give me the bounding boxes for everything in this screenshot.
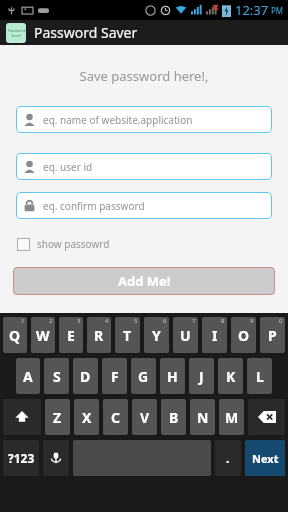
staticText: R — [94, 326, 104, 345]
staticText: 0 — [279, 317, 283, 325]
staticText: A — [23, 367, 33, 386]
button[interactable]: T — [115, 317, 140, 353]
button[interactable]: P — [260, 317, 285, 353]
staticText: Password Saver — [34, 23, 138, 42]
button[interactable]: G — [131, 358, 156, 394]
staticText: H — [167, 367, 178, 386]
button[interactable]: F — [102, 358, 127, 394]
button[interactable]: B — [161, 399, 186, 435]
button[interactable]: S — [44, 358, 69, 394]
button[interactable]: D — [73, 358, 98, 394]
button[interactable]: Q — [3, 317, 27, 353]
button[interactable]: J — [189, 358, 214, 394]
staticText: 4 — [105, 317, 109, 325]
button[interactable]: eq. confirm password — [16, 192, 272, 219]
button[interactable]: R — [87, 317, 111, 353]
staticText: 1 — [21, 317, 25, 325]
button[interactable]: show passowrd — [17, 237, 110, 251]
staticText: 7 — [192, 317, 196, 325]
staticText: Add Me! — [118, 272, 171, 290]
staticText: S — [53, 367, 61, 386]
staticText: Next — [252, 451, 279, 466]
staticText: G — [138, 367, 149, 386]
staticText: J — [199, 367, 204, 386]
button[interactable]: Voice input — [43, 440, 69, 476]
button[interactable]: V — [132, 399, 157, 435]
staticText: K — [226, 367, 236, 386]
button[interactable]: Y — [144, 317, 169, 353]
staticText: C — [111, 408, 120, 427]
staticText: D — [80, 367, 91, 386]
button[interactable]: L — [247, 358, 272, 394]
button[interactable]: eq. user id — [16, 153, 272, 180]
staticText: E — [67, 326, 75, 345]
staticText: 8 — [221, 317, 225, 325]
staticText: ?123 — [8, 450, 35, 466]
staticText: 5 — [134, 317, 138, 325]
staticText: T — [123, 326, 132, 345]
button[interactable]: I — [202, 317, 227, 353]
staticText: . — [226, 450, 230, 466]
button[interactable]: H — [160, 358, 185, 394]
button[interactable]: . — [215, 440, 241, 476]
button[interactable]: O — [231, 317, 256, 353]
staticText: Y — [152, 326, 161, 345]
staticText: O — [238, 326, 250, 345]
staticText: F — [111, 367, 119, 386]
staticText: I — [212, 326, 218, 345]
button[interactable]: eq. name of website,application — [16, 106, 272, 133]
staticText: 6 — [163, 317, 167, 325]
staticText: W — [36, 326, 50, 345]
staticText: L — [256, 367, 264, 386]
staticText: M — [225, 408, 239, 427]
staticText: eq. confirm password — [43, 199, 145, 213]
button[interactable]: A — [16, 358, 40, 394]
button[interactable]: Next — [245, 440, 285, 476]
staticText: P — [268, 326, 277, 345]
staticText: U — [180, 326, 191, 345]
button[interactable]: Backspace — [248, 399, 285, 435]
button[interactable]: X — [74, 399, 99, 435]
staticText: eq. user id — [43, 160, 93, 174]
staticText: 2 — [49, 317, 53, 325]
staticText: show passowrd — [37, 237, 110, 251]
button[interactable]: N — [190, 399, 215, 435]
button[interactable]: ?123 — [3, 440, 39, 476]
staticText: Q — [9, 326, 21, 345]
button[interactable]: E — [59, 317, 83, 353]
staticText: 12:37 — [235, 1, 269, 19]
staticText: eq. name of website,application — [43, 113, 193, 127]
staticText: Z — [53, 408, 62, 427]
staticText: Password — [7, 28, 26, 33]
staticText: N — [197, 408, 209, 427]
staticText: PM — [271, 5, 284, 16]
button[interactable]: Add Me! — [13, 267, 275, 295]
button[interactable]: W — [31, 317, 55, 353]
staticText: X — [82, 408, 92, 427]
button[interactable]: U — [173, 317, 198, 353]
staticText: B — [169, 408, 179, 427]
staticText: Save password here!, — [0, 67, 288, 85]
button[interactable]: Shift — [3, 399, 41, 435]
staticText: 3 — [77, 317, 81, 325]
staticText: 9 — [250, 317, 254, 325]
button[interactable]: Z — [45, 399, 70, 435]
button[interactable]: K — [218, 358, 243, 394]
button[interactable]: M — [219, 399, 244, 435]
button[interactable]: C — [103, 399, 128, 435]
staticText: Saver — [11, 33, 22, 38]
staticText: V — [140, 408, 150, 427]
